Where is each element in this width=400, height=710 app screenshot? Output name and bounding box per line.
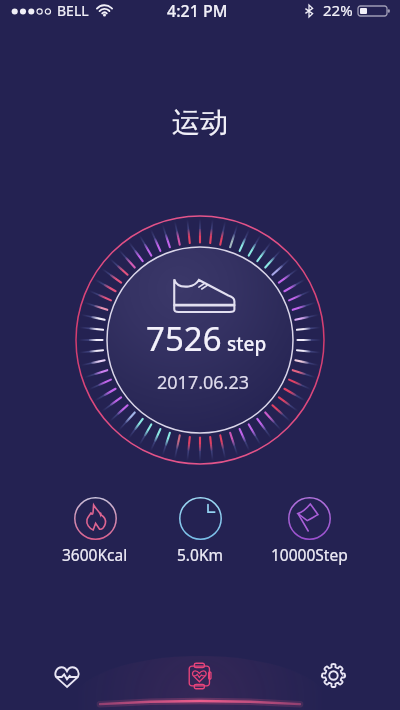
- staticText: 7526: [146, 316, 222, 361]
- button[interactable]: Activity: [173, 649, 227, 703]
- button[interactable]: 3600Kcal: [45, 497, 145, 565]
- staticText: 4:21 PM: [167, 0, 228, 22]
- staticText: 3600Kcal: [62, 544, 128, 565]
- staticText: 5.0Km: [177, 544, 223, 565]
- staticText: 22%: [323, 0, 353, 20]
- staticText: BELL: [57, 1, 89, 20]
- button[interactable]: 5.0Km: [150, 497, 250, 565]
- staticText: 10000Step: [271, 544, 348, 565]
- button[interactable]: Health: [40, 649, 94, 703]
- staticText: step: [227, 331, 267, 357]
- staticText: 运动: [172, 105, 228, 140]
- staticText: 2017.06.23: [157, 370, 250, 395]
- button[interactable]: 10000Step: [259, 497, 359, 565]
- button[interactable]: Settings: [306, 648, 360, 702]
